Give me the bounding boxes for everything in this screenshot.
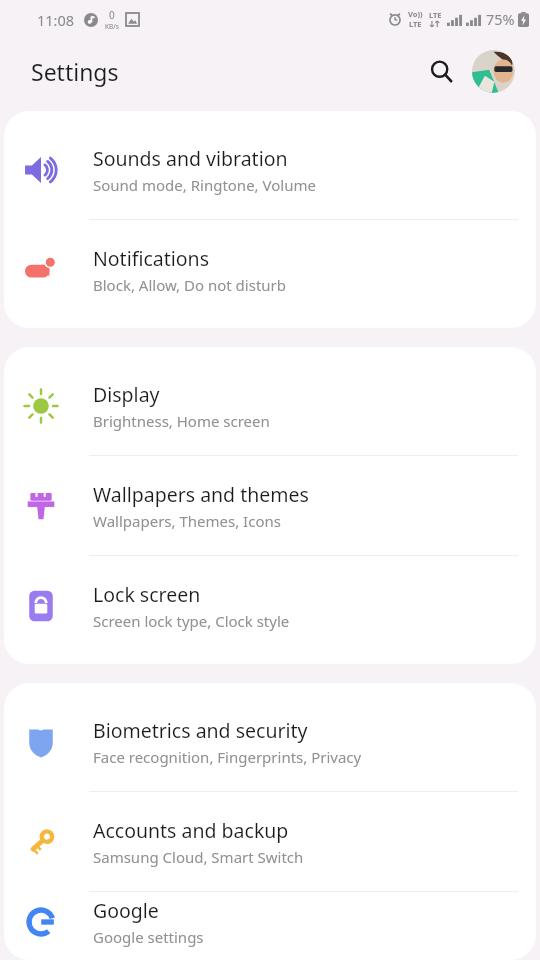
staticText: Brightness, Home screen	[93, 411, 270, 431]
staticText: KB/s	[105, 22, 119, 31]
button[interactable]: Sounds and vibration	[4, 120, 536, 219]
button[interactable]: Notifications	[4, 220, 536, 319]
button[interactable]: Biometrics and security	[4, 692, 536, 791]
staticText: Lock screen	[93, 581, 201, 608]
button[interactable]: Display	[4, 356, 536, 455]
staticText: Sound mode, Ringtone, Volume	[93, 175, 316, 195]
staticText: Vo))	[408, 9, 423, 19]
staticText: 0	[109, 8, 115, 22]
staticText: Google settings	[93, 927, 204, 947]
button[interactable]: Lock screen	[4, 556, 536, 655]
staticText: Block, Allow, Do not disturb	[93, 275, 287, 295]
staticText: Display	[93, 381, 160, 408]
staticText: LTE	[409, 19, 422, 29]
staticText: Sounds and vibration	[93, 145, 288, 172]
staticText: Screen lock type, Clock style	[93, 611, 290, 631]
staticText: 11:08	[37, 10, 75, 30]
staticText: Wallpapers, Themes, Icons	[93, 511, 281, 531]
staticText: LTE	[429, 10, 442, 20]
staticText: Settings	[31, 56, 119, 87]
button[interactable]: Search	[419, 49, 463, 93]
staticText: Notifications	[93, 245, 209, 272]
staticText: Samsung Cloud, Smart Switch	[93, 847, 304, 867]
button[interactable]: Profile	[471, 49, 515, 93]
staticText: Face recognition, Fingerprints, Privacy	[93, 747, 362, 767]
staticText: Wallpapers and themes	[93, 481, 309, 508]
staticText: Google	[93, 897, 159, 924]
staticText: Accounts and backup	[93, 817, 289, 844]
button[interactable]: Google	[4, 892, 536, 951]
staticText: 75%	[486, 9, 515, 29]
staticText: Biometrics and security	[93, 717, 308, 744]
button[interactable]: Accounts and backup	[4, 792, 536, 891]
button[interactable]: Wallpapers and themes	[4, 456, 536, 555]
